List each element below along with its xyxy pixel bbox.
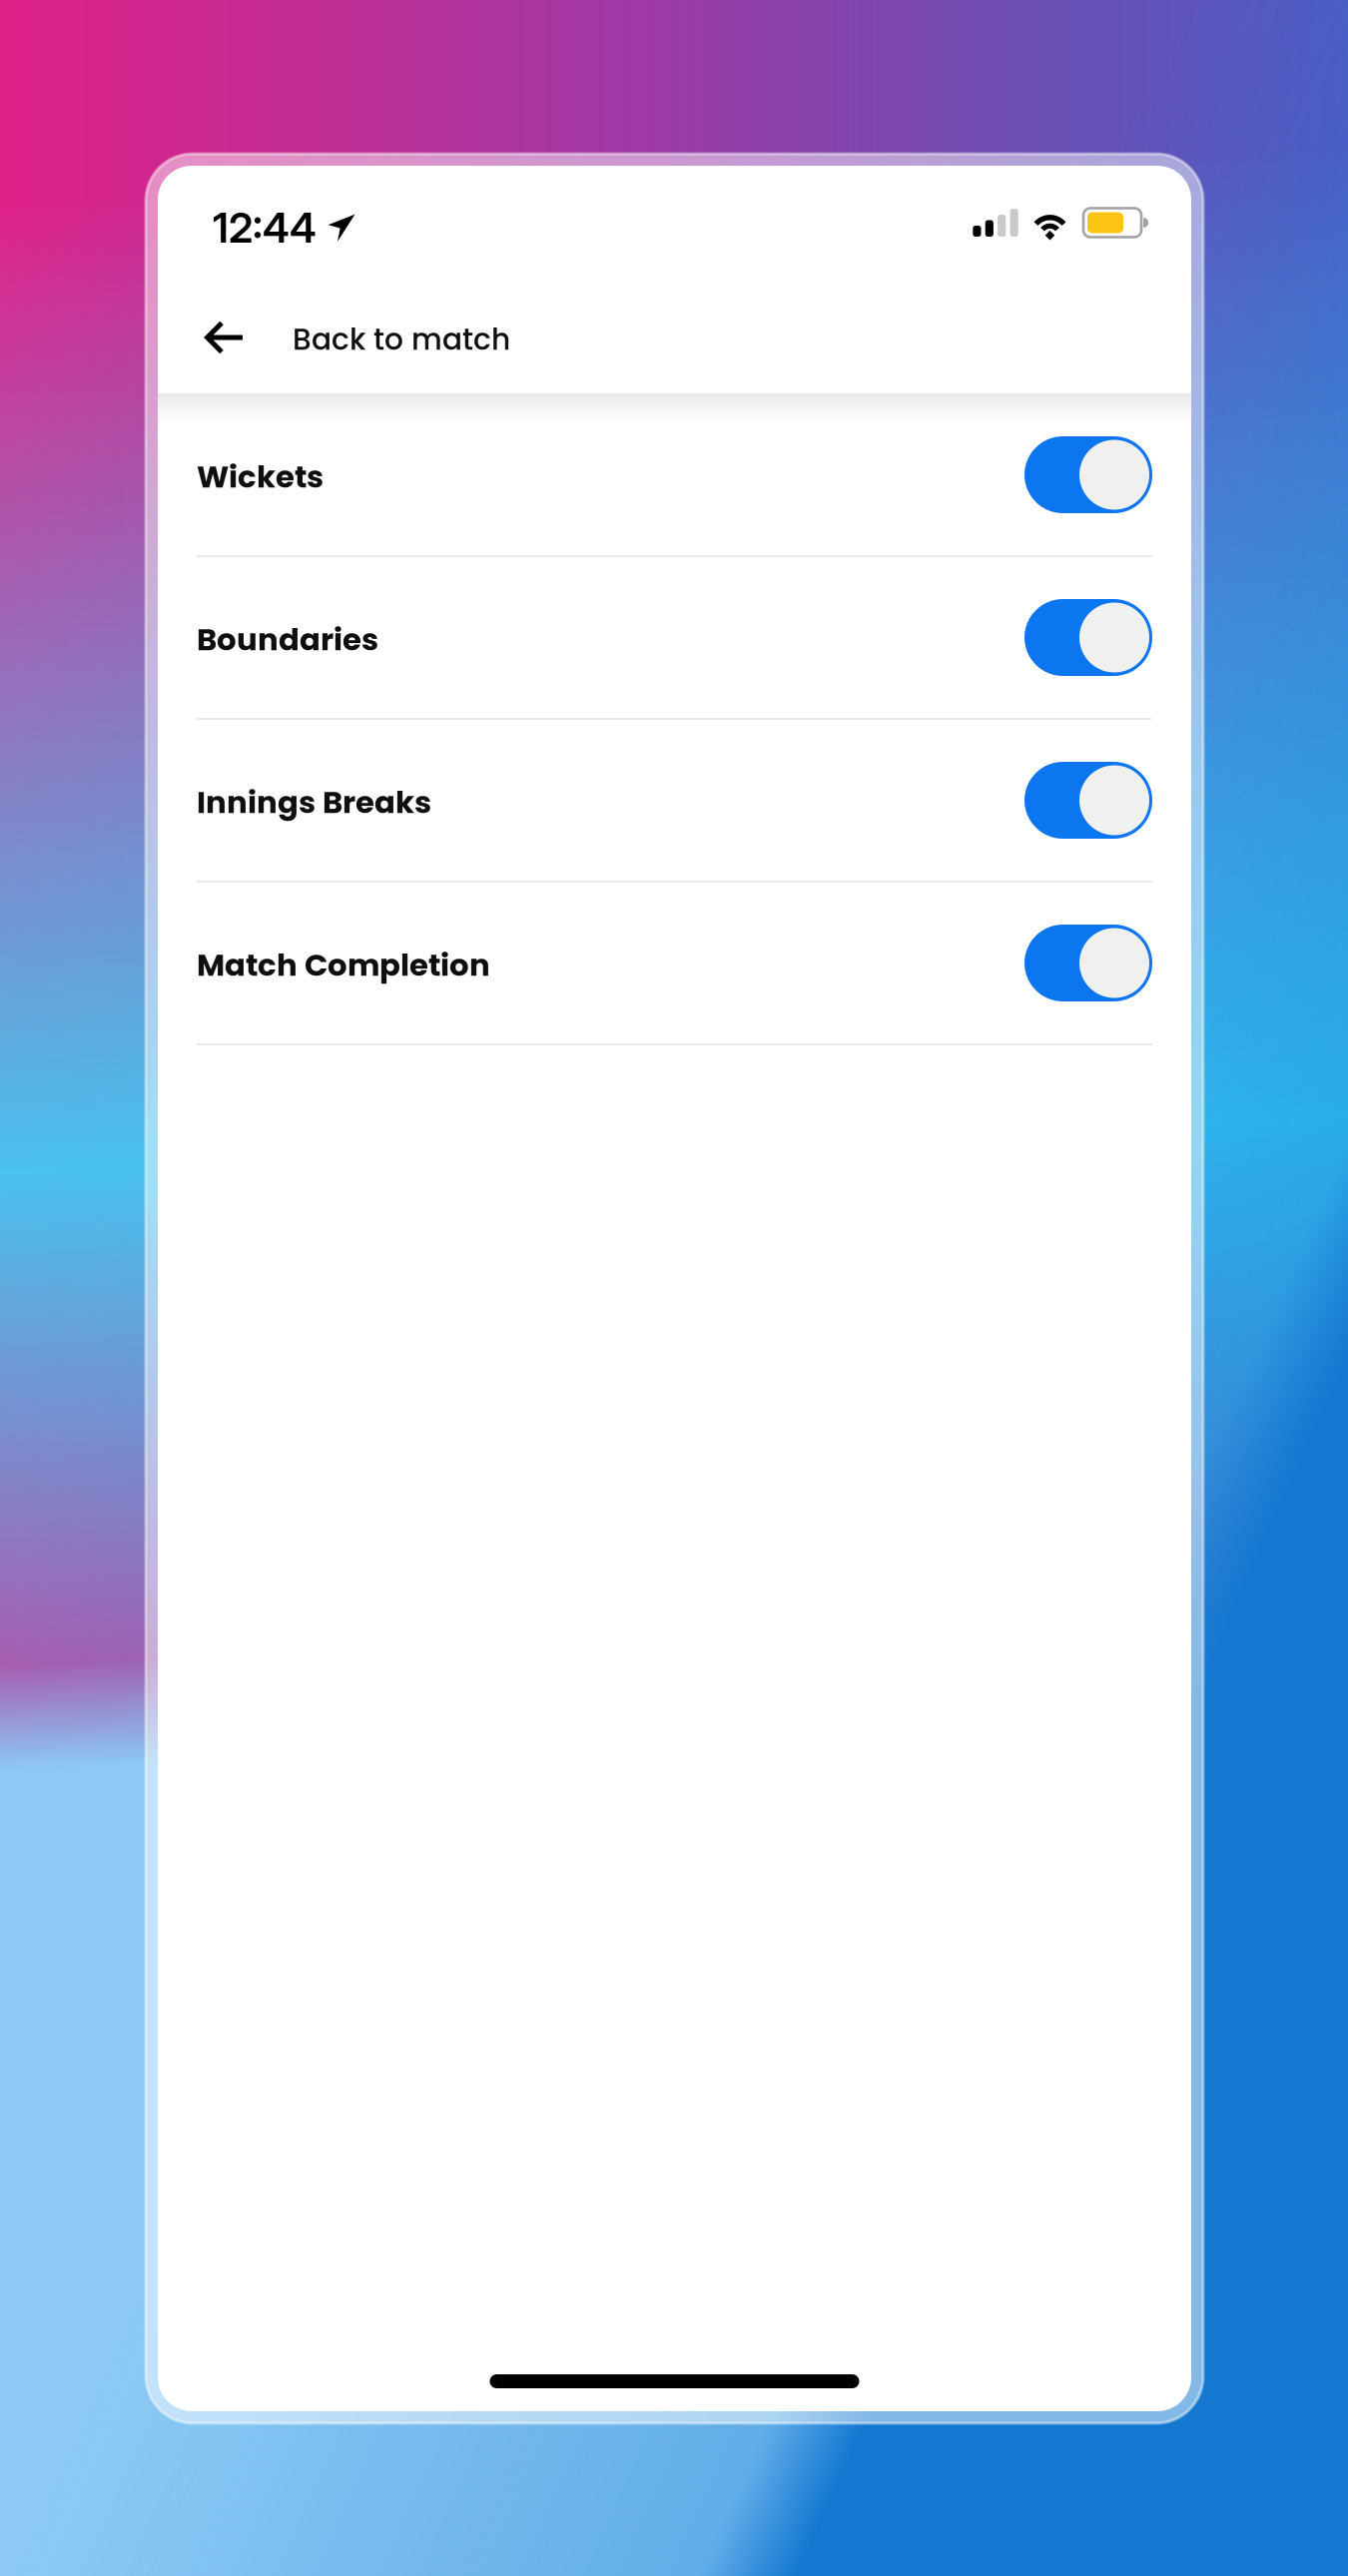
button[interactable]: Wickets <box>158 394 1191 555</box>
staticText: Wickets <box>197 455 324 498</box>
staticText: 12:44 <box>213 203 317 253</box>
staticText: Match Completion <box>197 944 490 986</box>
staticText: Innings Breaks <box>197 781 431 824</box>
button[interactable]: Back to match <box>158 276 1191 393</box>
button[interactable]: Match Completion <box>158 883 1191 1043</box>
button[interactable]: Innings Breaks <box>158 720 1191 881</box>
staticText: Back to match <box>293 319 510 360</box>
button[interactable]: Boundaries <box>158 557 1191 718</box>
staticText: Boundaries <box>197 618 378 661</box>
